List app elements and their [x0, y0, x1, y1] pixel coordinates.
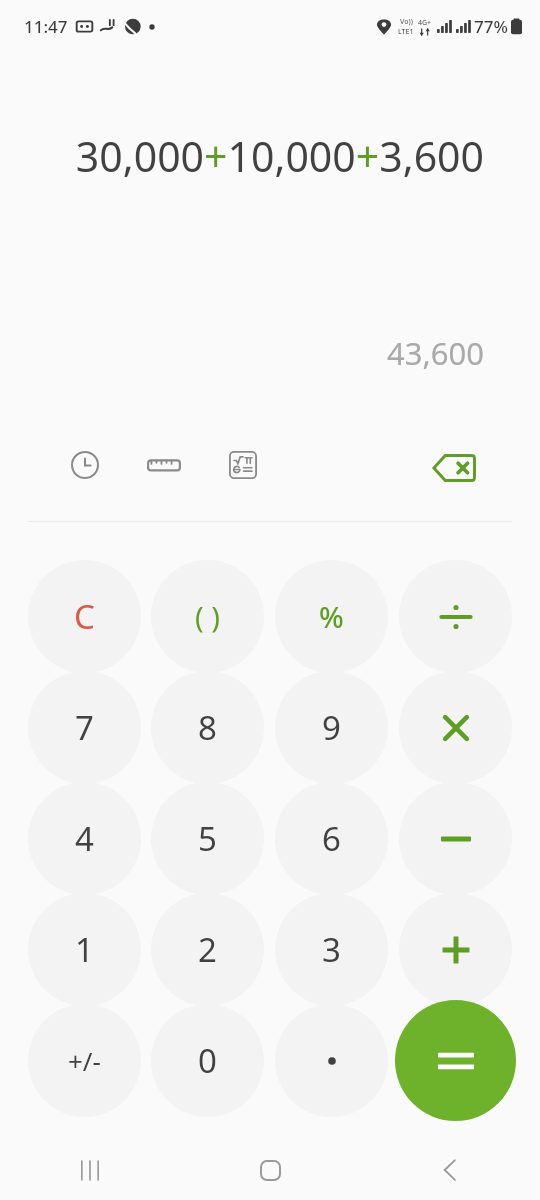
staticText: 7	[75, 705, 94, 750]
button[interactable]: Subtract	[399, 782, 512, 895]
button[interactable]: 6	[275, 782, 388, 895]
button[interactable]: History	[60, 440, 110, 490]
button[interactable]: Recent apps	[0, 1140, 180, 1200]
staticText: 4G+	[418, 18, 432, 28]
button[interactable]: C	[28, 560, 141, 673]
staticText: 77%	[474, 15, 508, 38]
button[interactable]: %	[275, 560, 388, 673]
staticText: 5	[198, 816, 217, 861]
button[interactable]: 3	[275, 893, 388, 1006]
staticText: 8	[198, 705, 217, 750]
staticText: 43,600	[387, 332, 484, 374]
staticText: C	[74, 594, 95, 639]
staticText: %	[319, 597, 344, 636]
button[interactable]: Backspace	[425, 440, 483, 496]
staticText: 2	[198, 927, 217, 972]
button[interactable]: Equals	[395, 1000, 516, 1121]
staticText: 11:47	[24, 15, 68, 38]
button[interactable]: Multiply	[399, 671, 512, 784]
button[interactable]: 4	[28, 782, 141, 895]
button[interactable]: +/-	[28, 1004, 141, 1117]
staticText: 9	[322, 705, 341, 750]
staticText: 6	[322, 816, 341, 861]
staticText: LTE1	[398, 27, 414, 37]
button[interactable]: Add	[399, 893, 512, 1006]
staticText: +/-	[68, 1043, 101, 1078]
button[interactable]: 9	[275, 671, 388, 784]
staticText: 1	[75, 927, 94, 972]
button[interactable]: 2	[151, 893, 264, 1006]
button[interactable]: Home	[180, 1140, 360, 1200]
button[interactable]: Back	[360, 1140, 540, 1200]
button[interactable]: 5	[151, 782, 264, 895]
staticText: Vo))	[400, 17, 413, 27]
button[interactable]: 7	[28, 671, 141, 784]
button[interactable]: ( )	[151, 560, 264, 673]
staticText: ( )	[195, 597, 220, 636]
button[interactable]: 1	[28, 893, 141, 1006]
staticText: 3	[322, 927, 341, 972]
button[interactable]: 8	[151, 671, 264, 784]
button[interactable]: Unit converter	[139, 440, 189, 490]
button[interactable]: Decimal point	[275, 1004, 388, 1117]
staticText: 30,000+10,000+3,600	[75, 128, 484, 184]
button[interactable]: Scientific calculator	[218, 440, 268, 490]
staticText: 4	[75, 816, 94, 861]
button[interactable]: 0	[151, 1004, 264, 1117]
staticText: 0	[198, 1038, 217, 1083]
button[interactable]: Divide	[399, 560, 512, 673]
